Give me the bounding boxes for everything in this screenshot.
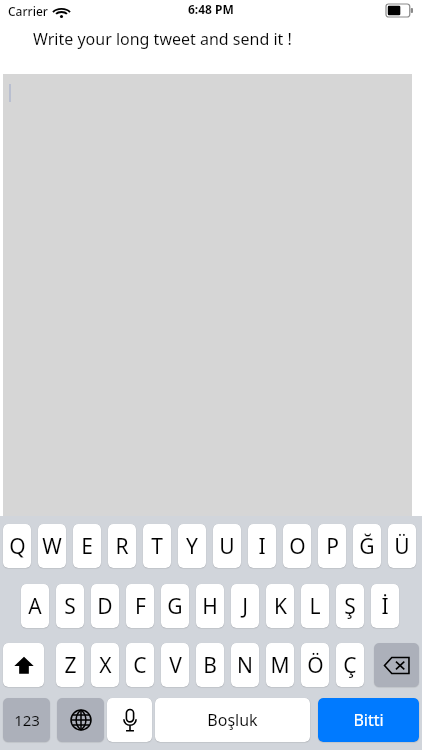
button[interactable]: I [248, 524, 276, 568]
button[interactable]: W [38, 524, 66, 568]
staticText: 6:48 PM [188, 1, 234, 17]
button[interactable]: O [283, 524, 311, 568]
staticText: 123 [14, 710, 40, 730]
staticText: B [203, 651, 217, 680]
button[interactable]: P [318, 524, 346, 568]
button[interactable]: T [143, 524, 171, 568]
button[interactable]: F [126, 584, 154, 628]
staticText: A [28, 592, 42, 621]
staticText: D [97, 592, 113, 621]
button[interactable]: Ğ [353, 524, 381, 568]
staticText: I [258, 532, 266, 561]
staticText: E [81, 532, 93, 561]
staticText: Carrier [8, 3, 48, 19]
staticText: Write your long tweet and send it ! [33, 28, 292, 50]
staticText: N [237, 651, 253, 680]
staticText: X [99, 651, 112, 680]
staticText: U [219, 532, 235, 561]
staticText: M [270, 651, 290, 680]
button[interactable]: E [73, 524, 101, 568]
staticText: V [169, 651, 182, 680]
staticText: Ö [307, 651, 324, 680]
staticText: O [289, 532, 306, 561]
button[interactable]: İ [371, 584, 399, 628]
button[interactable]: H [196, 584, 224, 628]
button[interactable]: M [266, 643, 294, 687]
button[interactable]: Delete [374, 643, 419, 687]
button[interactable]: D [91, 584, 119, 628]
button[interactable]: B [196, 643, 224, 687]
staticText: İ [381, 592, 389, 621]
button[interactable]: K [266, 584, 294, 628]
staticText: Ç [343, 651, 357, 680]
staticText: C [133, 651, 147, 680]
button[interactable]: Dictation [107, 698, 152, 742]
button[interactable]: Ç [336, 643, 364, 687]
button[interactable]: X [91, 643, 119, 687]
button[interactable]: Y [178, 524, 206, 568]
button[interactable]: V [161, 643, 189, 687]
staticText: Z [64, 651, 77, 680]
button[interactable]: C [126, 643, 154, 687]
staticText: L [309, 592, 321, 621]
button[interactable]: Bitti [318, 698, 419, 742]
staticText: W [42, 532, 62, 561]
staticText: Ğ [359, 532, 375, 561]
button[interactable]: U [213, 524, 241, 568]
staticText: P [326, 532, 339, 561]
staticText: Boşluk [207, 709, 258, 731]
button[interactable]: Ü [388, 524, 416, 568]
button[interactable]: Shift [3, 643, 44, 687]
staticText: Y [186, 532, 198, 561]
button[interactable]: Ö [301, 643, 329, 687]
button[interactable]: L [301, 584, 329, 628]
staticText: T [151, 532, 163, 561]
staticText: S [64, 592, 76, 621]
staticText: Bitti [353, 709, 384, 731]
staticText: Ş [344, 592, 356, 621]
button[interactable]: Ş [336, 584, 364, 628]
staticText: R [115, 532, 129, 561]
staticText: K [274, 592, 287, 621]
button[interactable]: 123 [3, 698, 50, 742]
button[interactable]: A [21, 584, 49, 628]
staticText: Q [9, 532, 26, 561]
button[interactable]: J [231, 584, 259, 628]
button[interactable]: S [56, 584, 84, 628]
button[interactable]: R [108, 524, 136, 568]
button[interactable]: N [231, 643, 259, 687]
staticText: F [135, 592, 146, 621]
button[interactable]: Next keyboard [57, 698, 104, 742]
staticText: H [202, 592, 218, 621]
staticText: Ü [394, 532, 410, 561]
staticText: J [242, 592, 248, 621]
button[interactable]: G [161, 584, 189, 628]
button[interactable]: Q [3, 524, 31, 568]
staticText: G [167, 592, 183, 621]
button[interactable]: Z [56, 643, 84, 687]
button[interactable]: Boşluk [155, 698, 310, 742]
